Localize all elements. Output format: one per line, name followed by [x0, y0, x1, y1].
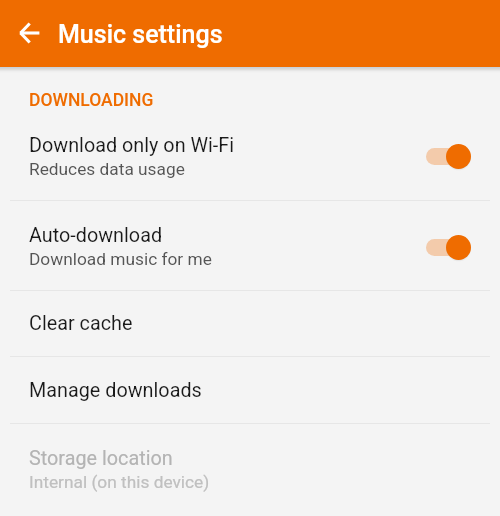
button[interactable]: Download only on Wi-Fi: [0, 110, 500, 200]
staticText: Music settings: [58, 20, 223, 49]
button[interactable]: Manage downloads: [0, 357, 500, 423]
staticText: Download only on Wi-Fi: [29, 134, 235, 157]
staticText: Clear cache: [29, 312, 133, 335]
button[interactable]: Clear cache: [0, 291, 500, 356]
staticText: Internal (on this device): [29, 472, 210, 492]
staticText: Manage downloads: [29, 379, 202, 402]
staticText: DOWNLOADING: [29, 90, 154, 111]
staticText: Storage location: [29, 447, 173, 470]
button[interactable]: Back: [13, 17, 45, 49]
button[interactable]: Auto-download: [0, 201, 500, 290]
staticText: Auto-download: [29, 224, 163, 247]
button[interactable]: Storage location: [0, 424, 500, 512]
staticText: Download music for me: [29, 249, 212, 269]
staticText: Reduces data usage: [29, 159, 185, 179]
